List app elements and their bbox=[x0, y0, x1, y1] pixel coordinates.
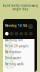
staticText: 15:00 bbox=[5, 60, 14, 63]
staticText: Drink water bbox=[5, 56, 21, 60]
staticText: Monday, 14 Oct bbox=[5, 24, 27, 27]
staticText: Meditation bbox=[5, 50, 21, 54]
staticText: 18:00 bbox=[5, 66, 14, 69]
staticText: 12:30 bbox=[5, 54, 14, 57]
staticText: single day bbox=[12, 7, 27, 11]
staticText: Evening walk bbox=[5, 62, 23, 66]
staticText: 7:00 bbox=[5, 42, 12, 45]
staticText: Build better habits every bbox=[2, 4, 37, 7]
staticText: 9:00 bbox=[5, 48, 12, 51]
staticText: Morning run bbox=[5, 38, 23, 42]
staticText: Read 20 pages bbox=[5, 44, 28, 48]
